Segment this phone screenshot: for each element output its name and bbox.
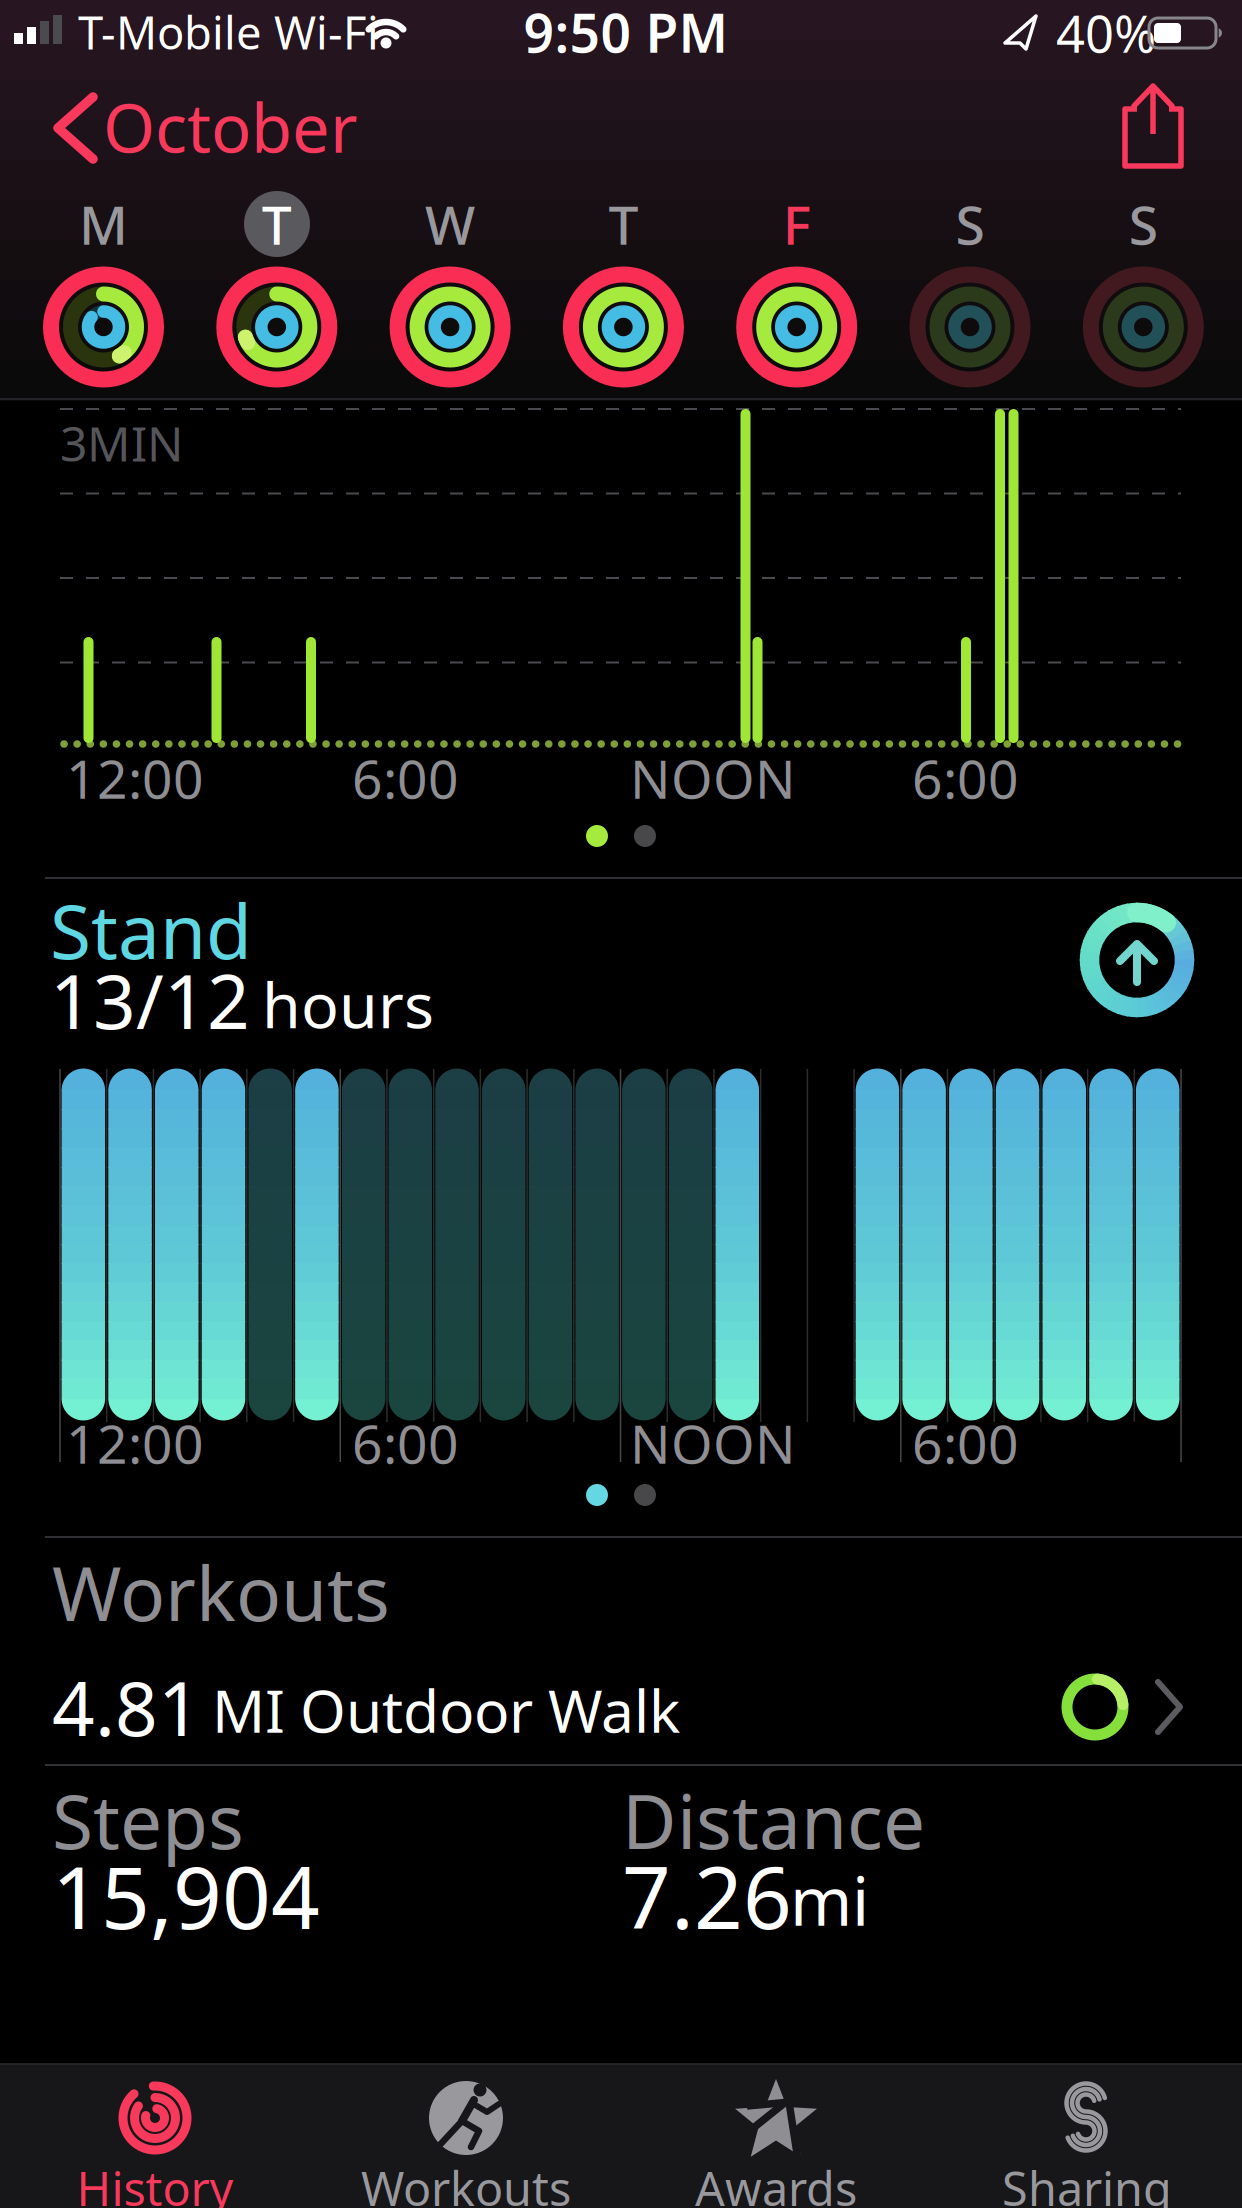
staticText: 7.26	[622, 1839, 792, 1953]
staticText: T	[608, 189, 638, 259]
staticText: 15,904	[52, 1839, 320, 1953]
staticText: 6:00	[912, 1408, 1019, 1478]
staticText: MI Outdoor Walk	[212, 1671, 680, 1749]
staticText: 9:50 PM	[523, 0, 728, 67]
staticText: History	[76, 2157, 233, 2208]
staticText: M	[79, 189, 128, 259]
staticText: NOON	[630, 743, 796, 813]
staticText: Stand	[50, 880, 252, 980]
staticText: 12:00	[66, 1408, 204, 1478]
staticText: W	[425, 189, 475, 259]
staticText: T	[262, 189, 292, 259]
staticText: October	[103, 83, 358, 171]
staticText: Workouts	[52, 1542, 390, 1642]
staticText: Distance	[622, 1770, 925, 1870]
staticText: S	[955, 189, 984, 259]
staticText: Awards	[695, 2157, 857, 2208]
staticText: 6:00	[912, 743, 1019, 813]
staticText: T-Mobile Wi-Fi	[78, 2, 379, 62]
staticText: 13/12	[50, 950, 250, 1050]
staticText: 12:00	[66, 743, 204, 813]
staticText: NOON	[630, 1408, 796, 1478]
staticText: F	[783, 189, 811, 259]
staticText: 3MIN	[60, 411, 183, 475]
staticText: 4.81	[52, 1657, 201, 1757]
staticText: 40%	[1056, 0, 1156, 67]
staticText: Workouts	[361, 2157, 571, 2208]
staticText: Sharing	[1002, 2157, 1172, 2208]
staticText: 6:00	[352, 743, 459, 813]
staticText: S	[1129, 189, 1158, 259]
staticText: hours	[262, 962, 434, 1046]
staticText: 6:00	[352, 1408, 459, 1478]
staticText: Steps	[52, 1770, 244, 1870]
staticText: mi	[790, 1856, 869, 1944]
